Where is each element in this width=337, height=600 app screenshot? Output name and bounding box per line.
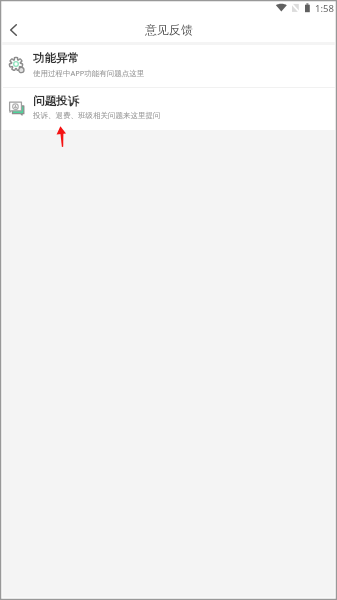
staticText: 功能异常 <box>33 51 79 65</box>
button[interactable]: 问题投诉 <box>0 88 337 130</box>
staticText: 投诉、退费、班级相关问题来这里提问 <box>33 111 161 120</box>
staticText: 意见反馈 <box>145 22 193 37</box>
button[interactable]: 功能异常 <box>0 45 337 87</box>
staticText: 1:58 <box>315 2 334 15</box>
staticText: 使用过程中APP功能有问题点这里 <box>33 68 145 78</box>
staticText: 问题投诉 <box>33 94 79 108</box>
button[interactable]: Back <box>0 17 26 42</box>
